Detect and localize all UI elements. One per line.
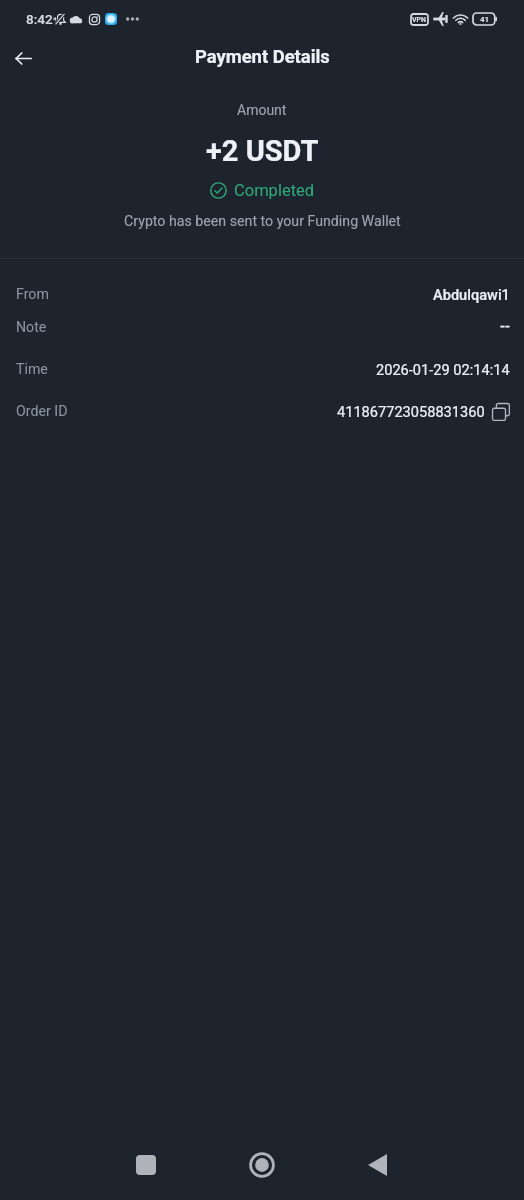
button[interactable]: From — [16, 283, 510, 305]
staticText: 41 — [480, 15, 490, 24]
staticText: -- — [500, 317, 510, 334]
staticText: Abdulqawi1 — [433, 286, 510, 303]
staticText: 8:42 — [26, 11, 53, 27]
button[interactable]: Back — [353, 1141, 401, 1189]
button[interactable]: Recent apps — [122, 1141, 170, 1189]
staticText: From — [16, 286, 49, 303]
staticText: 2026-01-29 02:14:14 — [376, 361, 510, 378]
button[interactable]: Note — [16, 316, 510, 338]
other: Copy order ID — [492, 401, 510, 419]
button[interactable]: Home — [238, 1141, 286, 1189]
staticText: VPN — [412, 16, 427, 24]
staticText: Payment Details — [195, 46, 330, 68]
button[interactable]: Back — [0, 35, 46, 81]
staticText: Completed — [234, 181, 315, 200]
staticText: Amount — [237, 102, 287, 118]
button[interactable]: Order ID — [16, 400, 510, 422]
staticText: +2 USDT — [206, 134, 319, 168]
button[interactable]: Time — [16, 358, 510, 380]
staticText: 411867723058831360 — [337, 403, 485, 420]
staticText: Crypto has been sent to your Funding Wal… — [124, 213, 401, 230]
staticText: Order ID — [16, 403, 68, 420]
staticText: Time — [16, 361, 48, 378]
staticText: Note — [16, 319, 47, 336]
